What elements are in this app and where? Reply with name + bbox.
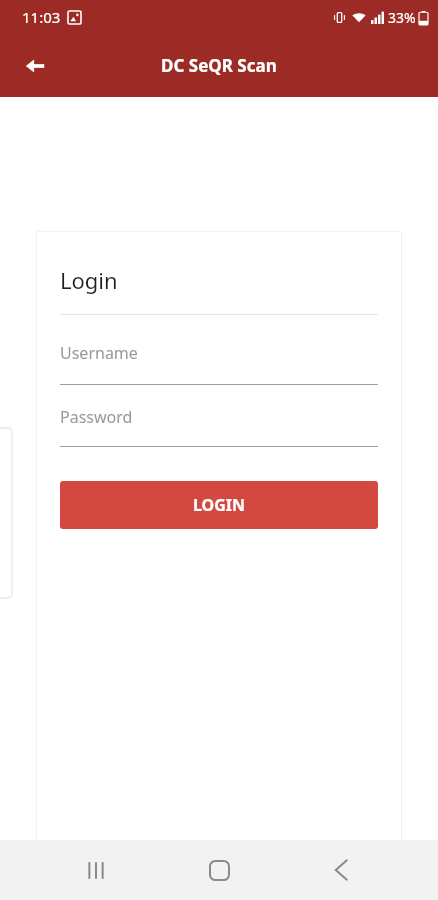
- button[interactable]: LOGIN: [60, 481, 378, 529]
- staticText: 11:03: [22, 7, 61, 27]
- staticText: LOGIN: [193, 494, 246, 516]
- staticText: DC SeQR Scan: [161, 54, 277, 77]
- button[interactable]: Password: [60, 385, 378, 447]
- button[interactable]: Recents: [68, 842, 124, 898]
- staticText: Login: [60, 265, 118, 295]
- staticText: Username: [60, 342, 138, 364]
- button[interactable]: Username: [60, 315, 378, 385]
- button[interactable]: Back: [313, 842, 369, 898]
- button[interactable]: Back: [12, 43, 58, 89]
- button[interactable]: Home: [191, 842, 247, 898]
- staticText: 33%: [388, 8, 416, 27]
- staticText: Password: [60, 406, 133, 428]
